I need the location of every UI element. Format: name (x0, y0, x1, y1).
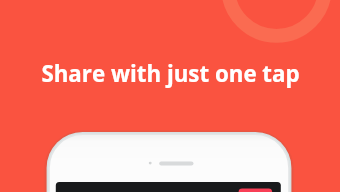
staticText: Share with just one tap (41, 58, 300, 88)
